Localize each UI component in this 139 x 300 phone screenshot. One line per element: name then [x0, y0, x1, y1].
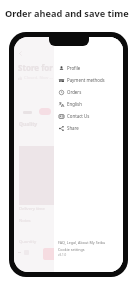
staticText: Share	[67, 125, 79, 131]
staticText: v3.1.0	[58, 253, 67, 257]
other: Orders	[59, 90, 64, 95]
staticText: Store for j	[18, 62, 58, 73]
staticText: Delivery time	[19, 206, 45, 212]
staticText: Orders	[67, 89, 82, 95]
staticText: Payment methods	[67, 77, 105, 83]
staticText: English	[67, 101, 82, 107]
other: Payment methods	[59, 78, 64, 83]
staticText: Contact Us	[67, 113, 90, 119]
other: Contact Us	[59, 114, 64, 119]
staticText: Quality	[19, 121, 38, 128]
other: Share	[59, 126, 64, 131]
button[interactable]: FAQ, Legal, About My Seibu	[58, 240, 106, 245]
staticText: Profile	[67, 65, 81, 71]
button[interactable]: English	[54, 98, 123, 110]
button[interactable]: Share	[54, 122, 123, 134]
staticText: Notes	[19, 218, 31, 224]
button[interactable]: Cookie settings	[58, 247, 85, 252]
button[interactable]: Payment methods	[54, 74, 123, 86]
button[interactable]: Contact Us	[54, 110, 123, 122]
other: Profile	[59, 66, 64, 71]
staticText: Order ahead and save time	[5, 7, 129, 20]
staticText: Closed. Now ...	[24, 75, 53, 81]
other: English	[59, 102, 64, 107]
staticText: Quantity	[19, 239, 37, 245]
button[interactable]: Orders	[54, 86, 123, 98]
button[interactable]: Profile	[54, 62, 123, 74]
